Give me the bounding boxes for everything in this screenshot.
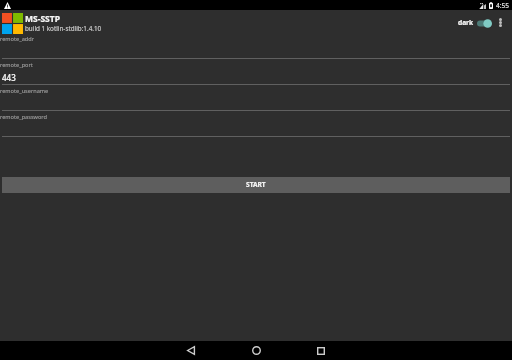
button[interactable]: START: [2, 177, 510, 193]
button[interactable]: Dark mode toggle: [477, 16, 492, 30]
button[interactable]: remote_addr: [0, 33, 512, 59]
staticText: remote_port: [0, 61, 33, 69]
staticText: START: [246, 180, 266, 189]
staticText: remote_password: [0, 113, 47, 121]
button[interactable]: Back: [159, 341, 223, 360]
button[interactable]: remote_password: [0, 111, 512, 137]
button[interactable]: remote_username: [0, 85, 512, 111]
button[interactable]: More options: [495, 13, 505, 31]
staticText: 4:55: [496, 1, 510, 10]
staticText: build 1 kotlin-stdlib:1.4.10: [25, 24, 102, 33]
staticText: MS-SSTP: [25, 13, 60, 25]
button[interactable]: Home: [224, 341, 288, 360]
staticText: remote_addr: [0, 35, 34, 43]
staticText: 443: [2, 72, 16, 83]
button[interactable]: Recents: [289, 341, 353, 360]
staticText: dark: [458, 18, 474, 27]
staticText: remote_username: [0, 87, 49, 95]
button[interactable]: remote_port: [0, 59, 512, 85]
